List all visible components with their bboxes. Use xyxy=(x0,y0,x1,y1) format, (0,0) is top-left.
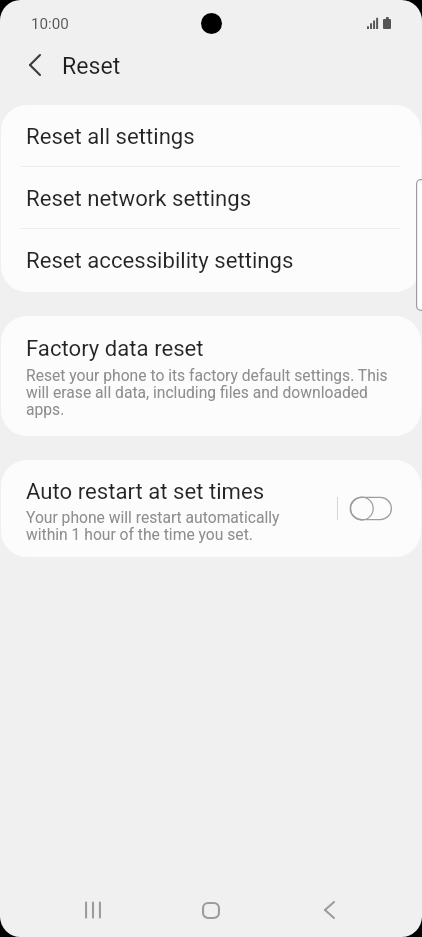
button[interactable]: Navigate up xyxy=(20,47,49,83)
button[interactable]: Reset accessibility settings xyxy=(1,229,421,291)
staticText: Reset all settings xyxy=(26,123,195,149)
button[interactable]: Factory data reset xyxy=(1,316,421,419)
staticText: Your phone will restart automatically wi… xyxy=(26,508,325,544)
staticText: Reset xyxy=(62,53,121,80)
button[interactable]: Reset all settings xyxy=(1,105,421,167)
staticText: 10:00 xyxy=(31,15,69,33)
staticText: Factory data reset xyxy=(26,335,204,361)
button[interactable]: Auto restart at set times, off xyxy=(350,496,392,521)
staticText: Reset network settings xyxy=(26,185,252,211)
button[interactable]: Recent apps xyxy=(69,886,117,934)
staticText: Reset accessibility settings xyxy=(26,247,294,273)
button[interactable]: Reset network settings xyxy=(1,167,421,229)
button[interactable]: Back xyxy=(305,886,353,934)
staticText: Auto restart at set times xyxy=(26,478,265,504)
button[interactable]: Auto restart at set times xyxy=(1,460,421,557)
staticText: Reset your phone to its factory default … xyxy=(26,366,392,419)
button[interactable]: Home xyxy=(187,886,235,934)
